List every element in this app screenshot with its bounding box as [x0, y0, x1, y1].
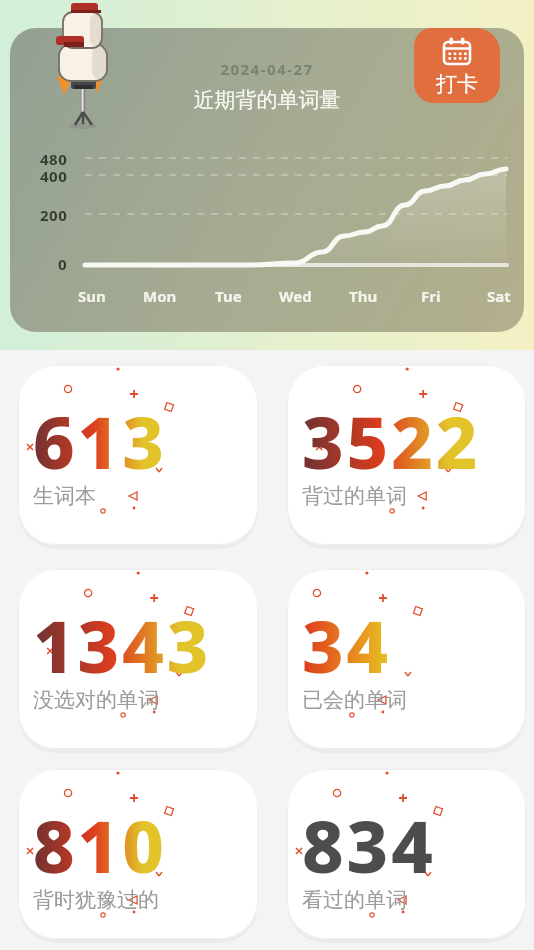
- staticText: 已会的单词: [302, 687, 407, 713]
- staticText: Sun: [78, 286, 106, 306]
- staticText: 2024-04-27: [10, 59, 524, 79]
- staticText: Tue: [215, 286, 242, 306]
- staticText: 810: [33, 796, 167, 894]
- staticText: 看过的单词: [302, 887, 407, 913]
- staticText: 834: [302, 796, 436, 894]
- button[interactable]: 834: [287, 769, 526, 939]
- staticText: 背过的单词: [302, 483, 407, 509]
- staticText: 400: [40, 166, 68, 186]
- staticText: 0: [58, 254, 68, 274]
- staticText: 生词本: [33, 483, 96, 509]
- button[interactable]: 3522: [287, 365, 526, 545]
- staticText: 近期背的单词量: [10, 87, 524, 113]
- staticText: 34: [302, 596, 392, 694]
- staticText: Sat: [487, 286, 511, 306]
- staticText: 613: [33, 392, 167, 490]
- button[interactable]: 810: [18, 769, 258, 939]
- staticText: Fri: [421, 286, 441, 306]
- button[interactable]: 34: [287, 569, 526, 749]
- staticText: 1343: [33, 596, 212, 694]
- staticText: Mon: [143, 286, 177, 306]
- staticText: Wed: [279, 286, 312, 306]
- staticText: 打卡: [414, 71, 500, 97]
- staticText: 480: [40, 149, 68, 169]
- staticText: Thu: [349, 286, 378, 306]
- staticText: 背时犹豫过的: [33, 887, 159, 913]
- button[interactable]: 打卡: [414, 28, 500, 103]
- button[interactable]: 613: [18, 365, 258, 545]
- button[interactable]: 1343: [18, 569, 258, 749]
- staticText: 没选对的单词: [33, 687, 159, 713]
- staticText: 200: [40, 205, 68, 225]
- staticText: 3522: [302, 392, 481, 490]
